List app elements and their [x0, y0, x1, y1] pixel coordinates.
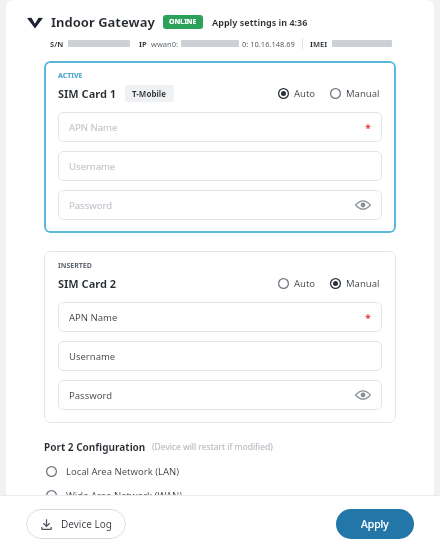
staticText: 0: 10.16.148.69	[242, 39, 295, 49]
button[interactable]: Manual	[328, 275, 382, 292]
button[interactable]: Auto	[276, 85, 318, 102]
staticText: Password	[69, 389, 112, 402]
staticText: Apply settings in 4:36	[212, 16, 308, 28]
staticText: IP	[139, 39, 147, 49]
staticText: Auto	[294, 277, 316, 290]
staticText: Manual	[346, 277, 380, 290]
staticText: Apply	[361, 517, 389, 531]
button[interactable]: Apply	[336, 509, 414, 539]
button[interactable]: Show password	[355, 387, 371, 403]
staticText: Wide Area Network (WAN)	[66, 489, 183, 502]
staticText: Local Area Network (LAN)	[66, 465, 180, 478]
button[interactable]: APN Name	[58, 302, 382, 332]
staticText: Device Log	[61, 517, 112, 531]
button[interactable]: Password	[58, 190, 382, 220]
button[interactable]: Show password	[355, 197, 371, 213]
button[interactable]: APN Name	[58, 112, 382, 142]
staticText: APN Name	[69, 311, 118, 324]
button[interactable]: Password	[58, 380, 382, 410]
staticText: SIM Card 2	[58, 276, 117, 291]
staticText: Username	[69, 160, 116, 173]
staticText: Username	[69, 350, 116, 363]
button[interactable]: Wide Area Network (WAN)	[44, 487, 185, 504]
staticText: *	[365, 120, 371, 135]
staticText: Port 2 Configuration	[44, 440, 146, 454]
staticText: Indoor Gateway	[51, 13, 155, 31]
staticText: Auto	[294, 87, 316, 100]
staticText: ONLINE	[169, 17, 197, 27]
staticText: IMEI	[310, 39, 328, 49]
staticText: Password	[69, 199, 112, 212]
staticText: T-Mobile	[132, 88, 167, 99]
button[interactable]: Auto	[276, 275, 318, 292]
button[interactable]: Username	[58, 341, 382, 371]
staticText: INSERTED	[58, 261, 92, 271]
staticText: ACTIVE	[58, 71, 83, 81]
button[interactable]: Manual	[328, 85, 382, 102]
button[interactable]: Username	[58, 151, 382, 181]
staticText: Manual	[346, 87, 380, 100]
button[interactable]: Local Area Network (LAN)	[44, 463, 182, 480]
staticText: (Device will restart if modified)	[152, 441, 273, 453]
staticText: wwan0:	[151, 39, 178, 49]
staticText: *	[365, 310, 371, 325]
button[interactable]: Device Log	[26, 509, 126, 539]
staticText: APN Name	[69, 121, 118, 134]
staticText: SIM Card 1	[58, 86, 117, 101]
staticText: S/N	[50, 39, 64, 49]
